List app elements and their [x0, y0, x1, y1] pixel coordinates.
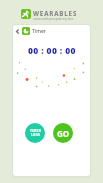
button[interactable]: Back — [13, 27, 21, 35]
staticText: connect with your goals any time — [33, 17, 74, 21]
button[interactable]: TIMER LOGS — [25, 123, 45, 143]
staticText: TIMER LOGS — [30, 129, 41, 137]
staticText: 00 : 00 : 00 — [28, 45, 76, 57]
staticText: WEARABLES — [33, 9, 78, 17]
staticText: GO — [57, 128, 70, 139]
staticText: Timer — [32, 28, 46, 35]
button[interactable]: GO — [53, 123, 73, 143]
